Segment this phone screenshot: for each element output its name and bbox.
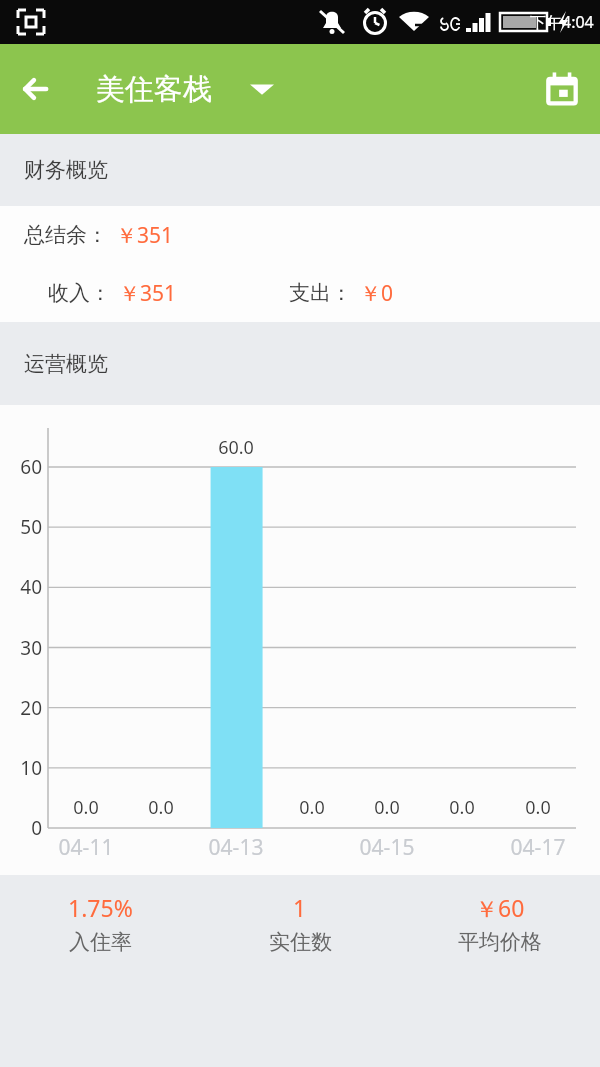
staticText: 04-11 xyxy=(41,833,131,862)
staticText: 财务概览 xyxy=(24,157,108,183)
staticText: 1.75% xyxy=(68,892,133,923)
staticText: 下午4:04 xyxy=(530,11,594,33)
button[interactable]: 美住客栈 xyxy=(96,44,274,134)
staticText: 收入： xyxy=(48,280,111,306)
button[interactable]: Back xyxy=(0,44,72,134)
staticText: 0.0 xyxy=(508,795,568,820)
staticText: 50 xyxy=(4,514,42,540)
staticText: 0.0 xyxy=(56,795,116,820)
staticText: 10 xyxy=(4,755,42,781)
staticText: ￥0 xyxy=(360,279,394,308)
staticText: 平均价格 xyxy=(458,929,542,955)
staticText: 入住率 xyxy=(69,929,132,955)
staticText: 0.0 xyxy=(432,795,492,820)
staticText: 运营概览 xyxy=(24,351,108,377)
staticText: 0.0 xyxy=(282,795,342,820)
staticText: 美住客栈 xyxy=(96,71,212,108)
button[interactable]: ￥60 xyxy=(400,875,600,971)
staticText: 实住数 xyxy=(269,929,332,955)
button[interactable]: Calendar xyxy=(524,44,600,134)
staticText: 40 xyxy=(4,574,42,600)
staticText: 60 xyxy=(4,454,42,480)
staticText: 04-17 xyxy=(493,833,583,862)
staticText: 60.0 xyxy=(206,435,266,460)
button[interactable]: 1.75% xyxy=(0,875,200,971)
staticText: 04-13 xyxy=(191,833,281,862)
staticText: 30 xyxy=(4,635,42,661)
button[interactable]: 1 xyxy=(200,875,400,971)
staticText: 0.0 xyxy=(131,795,191,820)
staticText: 20 xyxy=(4,695,42,721)
staticText: 支出： xyxy=(289,280,352,306)
staticText: 0.0 xyxy=(357,795,417,820)
staticText: ￥351 xyxy=(116,221,174,250)
staticText: 总结余： xyxy=(24,222,108,248)
staticText: 0 xyxy=(4,815,42,841)
staticText: 1 xyxy=(293,892,307,923)
staticText: ￥60 xyxy=(475,892,525,923)
staticText: ￥351 xyxy=(119,279,177,308)
staticText: 04-15 xyxy=(342,833,432,862)
